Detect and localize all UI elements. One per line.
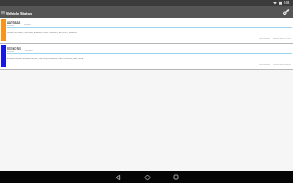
staticText: Stolen [24, 22, 32, 25]
staticText: Last update [259, 37, 271, 40]
button[interactable]: BD04ONU [0, 44, 293, 69]
button[interactable]: Keys [280, 6, 292, 18]
button[interactable]: Back [109, 171, 127, 183]
staticText: Parked [7, 50, 14, 53]
staticText: BD04ONU [7, 47, 22, 51]
button[interactable]: AA99AAA [0, 18, 293, 43]
staticText: 20/04/2015 14:04 [273, 37, 291, 40]
staticText: 18/04/2015 09:22 [273, 63, 291, 66]
staticText: Secure [25, 48, 33, 51]
staticText: Vehicle Status [6, 11, 33, 16]
staticText: Last update [259, 63, 271, 66]
button[interactable]: Home [138, 171, 156, 183]
staticText: Parked [7, 24, 14, 27]
button[interactable]: Open navigation drawer [0, 6, 6, 18]
staticText: AA99AAA [7, 21, 21, 25]
staticText: 1:05 [284, 1, 290, 5]
staticText: Bradford Depot, Bradford Road, Low Moor,… [7, 57, 292, 60]
staticText: Works Car Road, Low Moor, Bradford, West… [7, 31, 292, 34]
button[interactable]: Recent apps [167, 171, 185, 183]
